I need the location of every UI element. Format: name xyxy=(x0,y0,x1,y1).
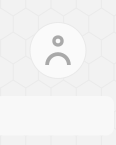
button[interactable]: Profile photo xyxy=(30,22,86,78)
